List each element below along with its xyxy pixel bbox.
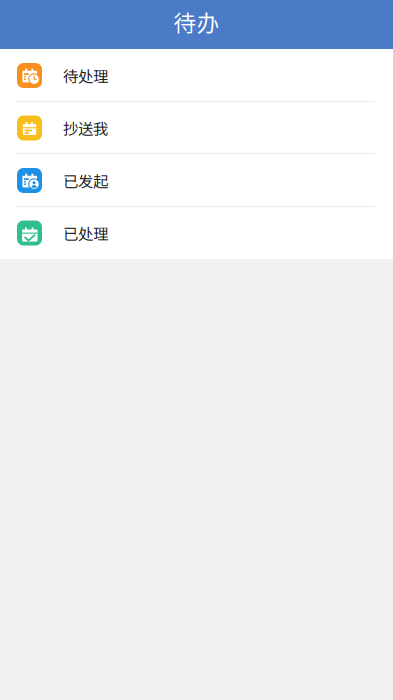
- staticText: 待处理: [63, 64, 108, 87]
- button[interactable]: 已处理: [0, 207, 393, 259]
- button[interactable]: 抄送我: [0, 102, 393, 154]
- staticText: 已处理: [63, 222, 108, 244]
- staticText: 抄送我: [63, 117, 108, 139]
- button[interactable]: 已发起: [0, 154, 393, 207]
- staticText: 待办: [173, 5, 219, 38]
- button[interactable]: 待处理: [0, 49, 393, 102]
- staticText: 已发起: [63, 169, 108, 192]
